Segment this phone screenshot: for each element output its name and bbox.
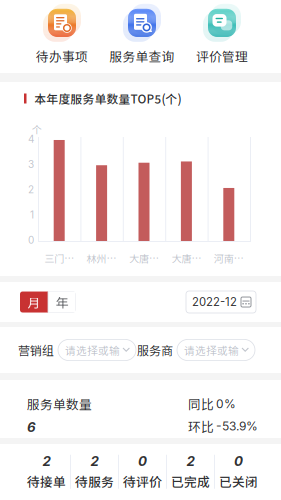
staticText: 同比: [188, 395, 214, 413]
staticText: 2: [28, 183, 34, 196]
button[interactable]: 0: [215, 453, 262, 490]
staticText: 服务单查询: [109, 47, 174, 65]
staticText: 3: [28, 158, 34, 170]
staticText: 环比: [188, 417, 214, 435]
staticText: 待接单: [27, 472, 66, 490]
staticText: 本年度服务单数量TOP5(个): [34, 90, 181, 107]
button[interactable]: 请选择或输: [177, 339, 255, 360]
staticText: 林州…: [87, 251, 117, 265]
staticText: 0: [28, 234, 34, 246]
staticText: 2: [186, 453, 194, 469]
staticText: 待服务: [75, 472, 114, 490]
button[interactable]: 2: [71, 453, 118, 490]
staticText: 服务单数量: [27, 395, 92, 413]
button[interactable]: 服务单查询: [102, 6, 182, 65]
staticText: 0: [138, 453, 147, 469]
button[interactable]: 请选择或输: [58, 339, 136, 360]
staticText: 请选择或输: [65, 342, 120, 358]
staticText: -53.9%: [216, 419, 258, 433]
staticText: 河南…: [214, 251, 244, 265]
staticText: 大唐…: [129, 251, 159, 265]
staticText: 0%: [216, 397, 236, 411]
button[interactable]: 月: [20, 291, 48, 312]
staticText: 4: [28, 133, 34, 145]
button[interactable]: 0: [119, 453, 166, 490]
staticText: 6: [27, 419, 36, 435]
staticText: 月: [27, 293, 40, 311]
staticText: 2: [90, 453, 98, 469]
staticText: 大唐…: [171, 251, 201, 265]
staticText: 年: [55, 293, 68, 311]
staticText: 已完成: [171, 472, 210, 490]
button[interactable]: 2: [167, 453, 214, 490]
staticText: 个: [32, 122, 42, 136]
staticText: 2022-12: [192, 295, 237, 309]
staticText: 已关闭: [219, 472, 258, 490]
staticText: 待评价: [123, 472, 162, 490]
staticText: 三门…: [44, 251, 74, 265]
staticText: 营销组: [18, 341, 54, 359]
button[interactable]: 评价管理: [182, 6, 262, 65]
staticText: 待办事项: [36, 47, 88, 65]
staticText: 2: [42, 453, 50, 469]
staticText: 0: [234, 453, 243, 469]
button[interactable]: 2: [23, 453, 70, 490]
button[interactable]: 待办事项: [22, 6, 102, 65]
staticText: 请选择或输: [184, 342, 239, 358]
button[interactable]: 2022-12: [186, 291, 256, 313]
staticText: 1: [30, 209, 34, 221]
staticText: 服务商: [137, 341, 173, 359]
button[interactable]: 年: [48, 291, 76, 312]
staticText: 评价管理: [196, 47, 248, 65]
